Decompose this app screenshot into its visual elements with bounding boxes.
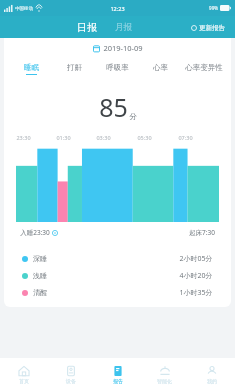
staticText: 浅睡 bbox=[33, 271, 47, 280]
button[interactable]: 心率变异性 bbox=[182, 58, 225, 80]
staticText: 05:30 bbox=[137, 134, 152, 141]
button[interactable]: 首页 bbox=[0, 358, 47, 390]
staticText: 深睡 bbox=[33, 254, 47, 263]
staticText: 分 bbox=[129, 112, 137, 121]
button[interactable]: 呼吸率 bbox=[96, 58, 139, 80]
staticText: 睡眠 bbox=[24, 63, 39, 72]
staticText: 首页 bbox=[19, 378, 29, 384]
button[interactable]: 清醒 bbox=[4, 284, 231, 301]
button[interactable]: 智能化 bbox=[141, 358, 188, 390]
staticText: 设备 bbox=[66, 378, 76, 384]
staticText: 我的 bbox=[207, 378, 217, 384]
staticText: 中国移动 bbox=[15, 6, 33, 12]
button[interactable]: 设备 bbox=[47, 358, 94, 390]
staticText: 23:30 bbox=[16, 134, 31, 141]
button[interactable]: 浅睡 bbox=[4, 267, 231, 284]
staticText: 01:30 bbox=[56, 134, 71, 141]
staticText: 更新报告 bbox=[199, 24, 225, 32]
staticText: 4小时20分 bbox=[179, 271, 213, 281]
staticText: 99% bbox=[209, 5, 218, 11]
staticText: 85 bbox=[99, 90, 128, 124]
staticText: 清醒 bbox=[33, 288, 47, 297]
staticText: 智能化 bbox=[157, 378, 172, 384]
staticText: 呼吸率 bbox=[106, 63, 129, 72]
staticText: 报告 bbox=[113, 378, 123, 384]
staticText: 2小时05分 bbox=[179, 254, 213, 264]
staticText: 打鼾 bbox=[67, 63, 82, 72]
button[interactable]: 睡眠 bbox=[10, 58, 53, 80]
staticText: 入睡23:30 bbox=[20, 228, 50, 237]
staticText: 1小时35分 bbox=[179, 288, 213, 298]
staticText: 心率 bbox=[153, 63, 168, 72]
button[interactable]: 报告 bbox=[94, 358, 141, 390]
button[interactable]: 打鼾 bbox=[53, 58, 96, 80]
staticText: 12:23 bbox=[110, 5, 125, 12]
button[interactable]: 入睡23:30 bbox=[20, 226, 58, 239]
button[interactable]: 2019-10-09 bbox=[89, 41, 147, 55]
button[interactable]: 心率 bbox=[139, 58, 182, 80]
staticText: 心率变异性 bbox=[185, 63, 223, 72]
staticText: 日报 bbox=[77, 21, 97, 34]
staticText: 07:30 bbox=[178, 134, 193, 141]
staticText: 起床7:30 bbox=[189, 228, 215, 237]
button[interactable]: 更新报告 bbox=[187, 22, 229, 34]
staticText: 2019-10-09 bbox=[103, 43, 143, 53]
button[interactable]: 深睡 bbox=[4, 250, 231, 267]
staticText: 03:30 bbox=[96, 134, 111, 141]
button[interactable]: 我的 bbox=[188, 358, 235, 390]
button[interactable]: 月报 bbox=[112, 20, 135, 35]
other: 说明 bbox=[52, 230, 58, 236]
staticText: 月报 bbox=[115, 22, 132, 33]
button[interactable]: 日报 bbox=[74, 19, 100, 36]
